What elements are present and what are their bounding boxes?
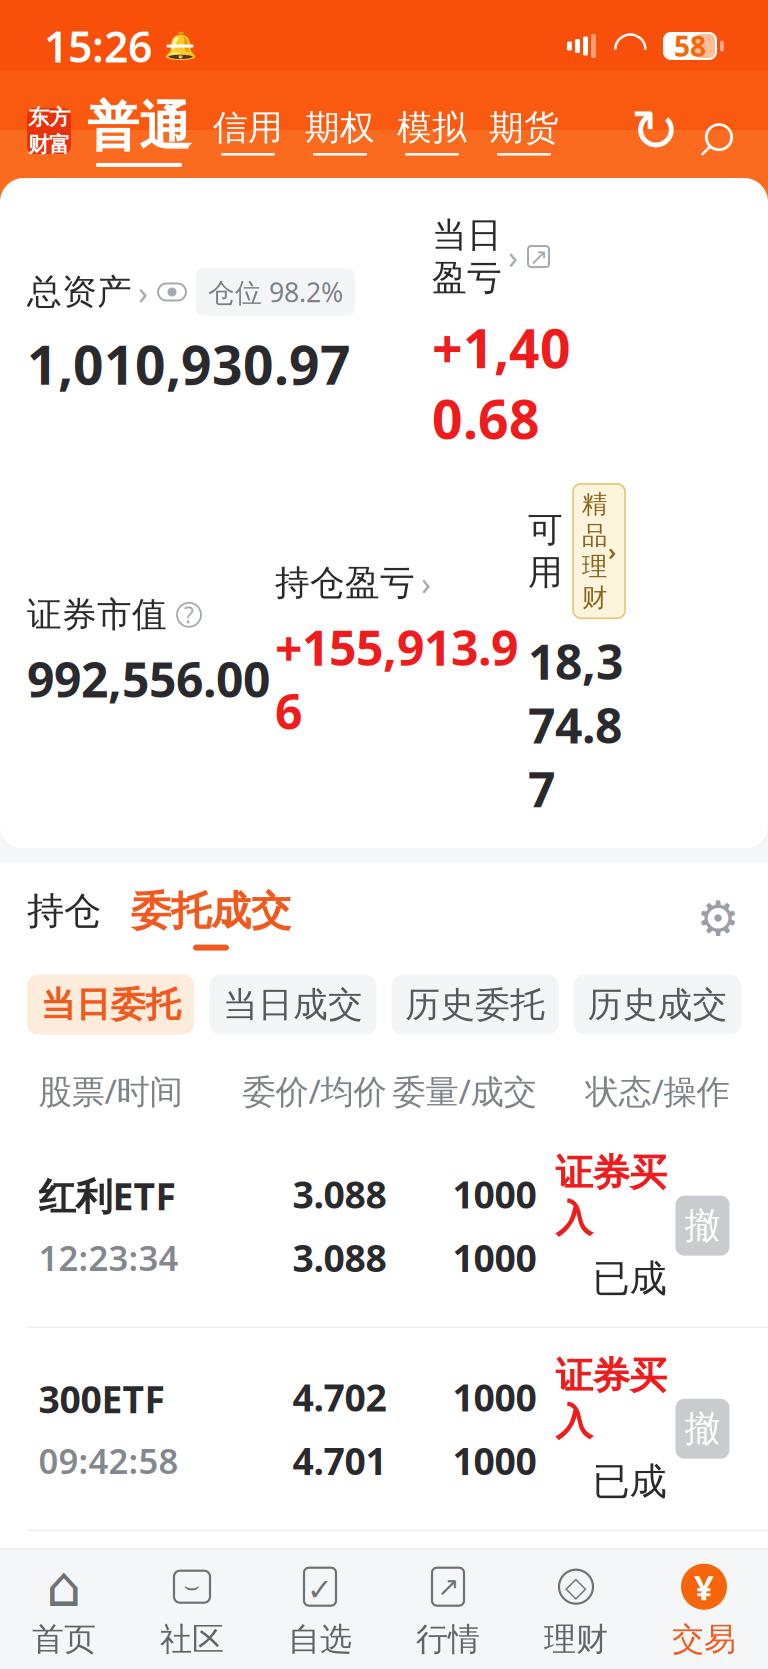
staticText: 1000 bbox=[452, 1436, 536, 1485]
staticText: 300ETF bbox=[38, 1374, 164, 1423]
staticText: 总资产 bbox=[27, 271, 132, 313]
staticText: ? bbox=[184, 600, 194, 630]
staticText: 可用 bbox=[528, 508, 563, 594]
staticText: +155,913.96 bbox=[275, 615, 518, 743]
staticText: 理财 bbox=[544, 1620, 608, 1659]
button[interactable]: 期权 bbox=[305, 106, 375, 156]
staticText: ↻ bbox=[630, 98, 679, 164]
staticText: 交易 bbox=[672, 1620, 736, 1659]
staticText: 4.701 bbox=[292, 1436, 386, 1485]
staticText: 0.631 bbox=[292, 1575, 386, 1625]
staticText: › bbox=[421, 562, 431, 604]
staticText: 社区 bbox=[160, 1620, 224, 1659]
staticText: 红利ETF bbox=[38, 1171, 175, 1220]
staticText: 1000 bbox=[452, 1233, 536, 1282]
button[interactable]: 历史成交 bbox=[574, 975, 741, 1035]
staticText: 🔔 bbox=[163, 31, 196, 61]
button[interactable]: 普通 bbox=[87, 95, 191, 167]
staticText: 58 bbox=[674, 27, 706, 65]
button[interactable]: 东方财富 bbox=[27, 108, 71, 154]
button[interactable]: ◇ bbox=[512, 1564, 640, 1659]
staticText: 状态/操作 bbox=[585, 1069, 729, 1113]
staticText: ◠ bbox=[614, 22, 647, 70]
staticText: 历史成交 bbox=[587, 983, 727, 1026]
staticText: 仓位 98.2% bbox=[208, 274, 343, 310]
staticText: 历史委托 bbox=[405, 983, 545, 1026]
staticText: ⚙ bbox=[696, 891, 739, 946]
staticText: ⌣ bbox=[183, 1574, 200, 1599]
button[interactable]: 刷新 bbox=[631, 107, 679, 155]
staticText: 1000 bbox=[452, 1372, 536, 1422]
staticText: 委托成交 bbox=[131, 886, 291, 936]
staticText: 东方 bbox=[28, 104, 70, 130]
staticText: 行情 bbox=[416, 1620, 480, 1659]
staticText: 1000 bbox=[452, 1575, 536, 1625]
staticText: +1,400.68 bbox=[432, 312, 571, 454]
button[interactable]: ↗ bbox=[384, 1564, 512, 1659]
staticText: 证券买入 bbox=[555, 1556, 666, 1648]
button[interactable]: 精品理财 bbox=[573, 484, 625, 618]
button[interactable]: 委托成交 bbox=[131, 886, 291, 951]
staticText: 3.088 bbox=[292, 1169, 386, 1219]
button[interactable]: 搜索 bbox=[693, 107, 741, 155]
staticText: ↗ bbox=[529, 244, 548, 269]
button[interactable]: 信用 bbox=[213, 106, 283, 156]
staticText: 模拟 bbox=[397, 106, 467, 149]
staticText: 已成 bbox=[592, 1256, 666, 1301]
button[interactable]: 期货 bbox=[489, 106, 559, 156]
button[interactable]: 历史委托 bbox=[391, 975, 559, 1035]
staticText: 普通 bbox=[87, 95, 191, 159]
button[interactable]: 设置 bbox=[695, 896, 741, 942]
staticText: 证券市值 bbox=[27, 593, 167, 636]
staticText: ↗ bbox=[437, 1572, 459, 1602]
staticText: 自选 bbox=[288, 1620, 352, 1659]
staticText: 4.702 bbox=[292, 1372, 386, 1422]
staticText: 撤 bbox=[684, 1610, 720, 1654]
staticText: 1,010,930.97 bbox=[27, 329, 351, 399]
staticText: 财富 bbox=[28, 131, 70, 158]
staticText: 持仓盈亏 bbox=[275, 562, 415, 604]
button[interactable]: 撤单 bbox=[675, 1602, 729, 1662]
staticText: 信用 bbox=[213, 106, 283, 149]
button[interactable]: 撤单 bbox=[675, 1399, 729, 1459]
staticText: 首页 bbox=[32, 1620, 96, 1659]
staticText: 已成 bbox=[592, 1459, 666, 1505]
staticText: 持仓 bbox=[27, 888, 101, 934]
staticText: 证券买入 bbox=[555, 1150, 666, 1242]
button[interactable]: ⌂ bbox=[0, 1564, 128, 1659]
staticText: 09:42:58 bbox=[38, 1437, 178, 1483]
staticText: 撤 bbox=[684, 1204, 720, 1248]
staticText: ¥ bbox=[694, 1564, 714, 1610]
staticText: 0.631 bbox=[292, 1639, 386, 1669]
staticText: 09:41:34 bbox=[38, 1641, 178, 1669]
staticText: 15:26 bbox=[44, 18, 152, 74]
staticText: › bbox=[608, 535, 616, 567]
staticText: 当日委托 bbox=[41, 983, 181, 1026]
button[interactable]: 撤单 bbox=[675, 1196, 729, 1256]
staticText: ◇ bbox=[565, 1571, 587, 1603]
staticText: 委量/成交 bbox=[392, 1069, 536, 1113]
button[interactable]: 模拟 bbox=[397, 106, 467, 156]
staticText: 证券买入 bbox=[555, 1353, 666, 1445]
staticText: 1000 bbox=[452, 1639, 536, 1669]
staticText: ⌕ bbox=[697, 70, 736, 192]
button[interactable]: ✓ bbox=[256, 1564, 384, 1659]
staticText: › bbox=[138, 271, 148, 313]
staticText: 当日盈亏 bbox=[432, 214, 502, 299]
button[interactable]: ⌣ bbox=[128, 1564, 256, 1659]
staticText: 1000 bbox=[452, 1169, 536, 1219]
button[interactable]: ¥ bbox=[640, 1564, 768, 1659]
staticText: 委价/均价 bbox=[242, 1069, 386, 1113]
staticText: ⌂ bbox=[46, 1555, 82, 1618]
staticText: 当日成交 bbox=[223, 983, 363, 1026]
staticText: 992,556.00 bbox=[27, 647, 270, 711]
staticText: 期权 bbox=[305, 106, 375, 149]
staticText: 精品理财 bbox=[582, 489, 607, 613]
staticText: 12:23:34 bbox=[38, 1234, 178, 1280]
button[interactable]: 当日委托 bbox=[27, 975, 194, 1035]
staticText: 养殖ETF bbox=[38, 1577, 175, 1627]
button[interactable]: 持仓 bbox=[27, 888, 101, 949]
button[interactable]: 当日成交 bbox=[209, 975, 376, 1035]
staticText: 18,374.87 bbox=[528, 629, 623, 820]
